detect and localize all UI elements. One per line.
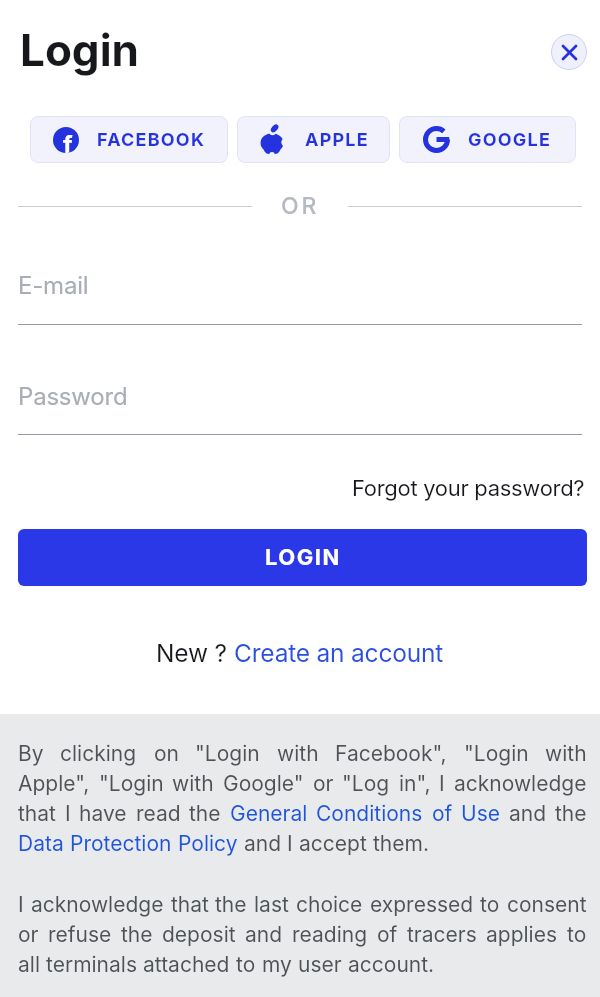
- staticText: read: [136, 801, 181, 826]
- staticText: with: [277, 741, 319, 766]
- staticText: expressed: [370, 892, 474, 917]
- button[interactable]: [551, 34, 587, 70]
- staticText: acknowledge: [31, 892, 164, 917]
- staticText: to: [480, 892, 500, 917]
- staticText: the: [555, 801, 587, 826]
- staticText: on: [154, 741, 179, 766]
- staticText: and: [244, 831, 287, 856]
- staticText: Data: [18, 831, 70, 856]
- staticText: or: [313, 771, 334, 796]
- staticText: all: [18, 952, 46, 977]
- staticText: that: [171, 892, 209, 917]
- staticText: my: [262, 952, 298, 977]
- staticText: with: [545, 741, 587, 766]
- staticText: refuse: [48, 922, 112, 947]
- staticText: Protection: [70, 831, 178, 856]
- staticText: consent: [507, 892, 587, 917]
- staticText: OR: [281, 192, 320, 220]
- staticText: New ?: [156, 638, 234, 668]
- staticText: Apple",: [18, 771, 90, 796]
- staticText: "Log: [342, 771, 390, 796]
- staticText: acknowledge: [454, 771, 587, 796]
- staticText: Use: [461, 801, 500, 826]
- staticText: Facebook",: [335, 741, 447, 766]
- staticText: and: [509, 801, 547, 826]
- staticText: "Login: [99, 771, 164, 796]
- staticText: APPLE: [305, 129, 369, 151]
- staticText: with: [172, 771, 214, 796]
- staticText: FACEBOOK: [97, 129, 206, 151]
- staticText: in",: [399, 771, 431, 796]
- button[interactable]: LOGIN: [18, 529, 587, 586]
- staticText: Login: [20, 23, 139, 76]
- staticText: "Login: [195, 741, 260, 766]
- staticText: GOOGLE: [468, 129, 552, 151]
- staticText: General: [230, 801, 308, 826]
- staticText: LOGIN: [265, 544, 341, 571]
- staticText: the: [215, 892, 247, 917]
- staticText: I: [439, 771, 445, 796]
- staticText: account.: [348, 952, 435, 977]
- staticText: accept: [299, 831, 373, 856]
- button[interactable]: GOOGLE: [399, 116, 576, 163]
- staticText: of: [377, 922, 398, 947]
- staticText: of: [432, 801, 453, 826]
- staticText: I: [287, 831, 299, 856]
- staticText: Password: [18, 382, 128, 411]
- staticText: the: [121, 922, 153, 947]
- staticText: "Login: [464, 741, 529, 766]
- staticText: applies: [486, 922, 558, 947]
- button[interactable]: Forgot your password?: [352, 475, 585, 502]
- staticText: user: [298, 952, 348, 977]
- staticText: By: [18, 741, 44, 766]
- staticText: them.: [373, 831, 429, 856]
- staticText: tracers: [407, 922, 477, 947]
- staticText: I: [18, 892, 24, 917]
- staticText: to: [567, 922, 587, 947]
- staticText: Policy: [178, 831, 244, 856]
- staticText: f: [63, 130, 73, 153]
- button[interactable]: f: [30, 116, 228, 163]
- staticText: have: [79, 801, 127, 826]
- staticText: clicking: [60, 741, 137, 766]
- staticText: attached: [143, 952, 236, 977]
- staticText: Conditions: [316, 801, 423, 826]
- staticText: and: [245, 922, 283, 947]
- staticText: or: [18, 922, 39, 947]
- staticText: E-mail: [18, 271, 89, 300]
- staticText: Google": [223, 771, 304, 796]
- staticText: deposit: [162, 922, 236, 947]
- staticText: choice: [296, 892, 363, 917]
- button[interactable]: Create an account: [234, 638, 444, 668]
- staticText: reading: [292, 922, 368, 947]
- staticText: to: [236, 952, 262, 977]
- staticText: the: [189, 801, 221, 826]
- button[interactable]: APPLE: [237, 116, 390, 163]
- staticText: terminals: [46, 952, 143, 977]
- staticText: last: [254, 892, 289, 917]
- staticText: that: [18, 801, 56, 826]
- staticText: I: [65, 801, 71, 826]
